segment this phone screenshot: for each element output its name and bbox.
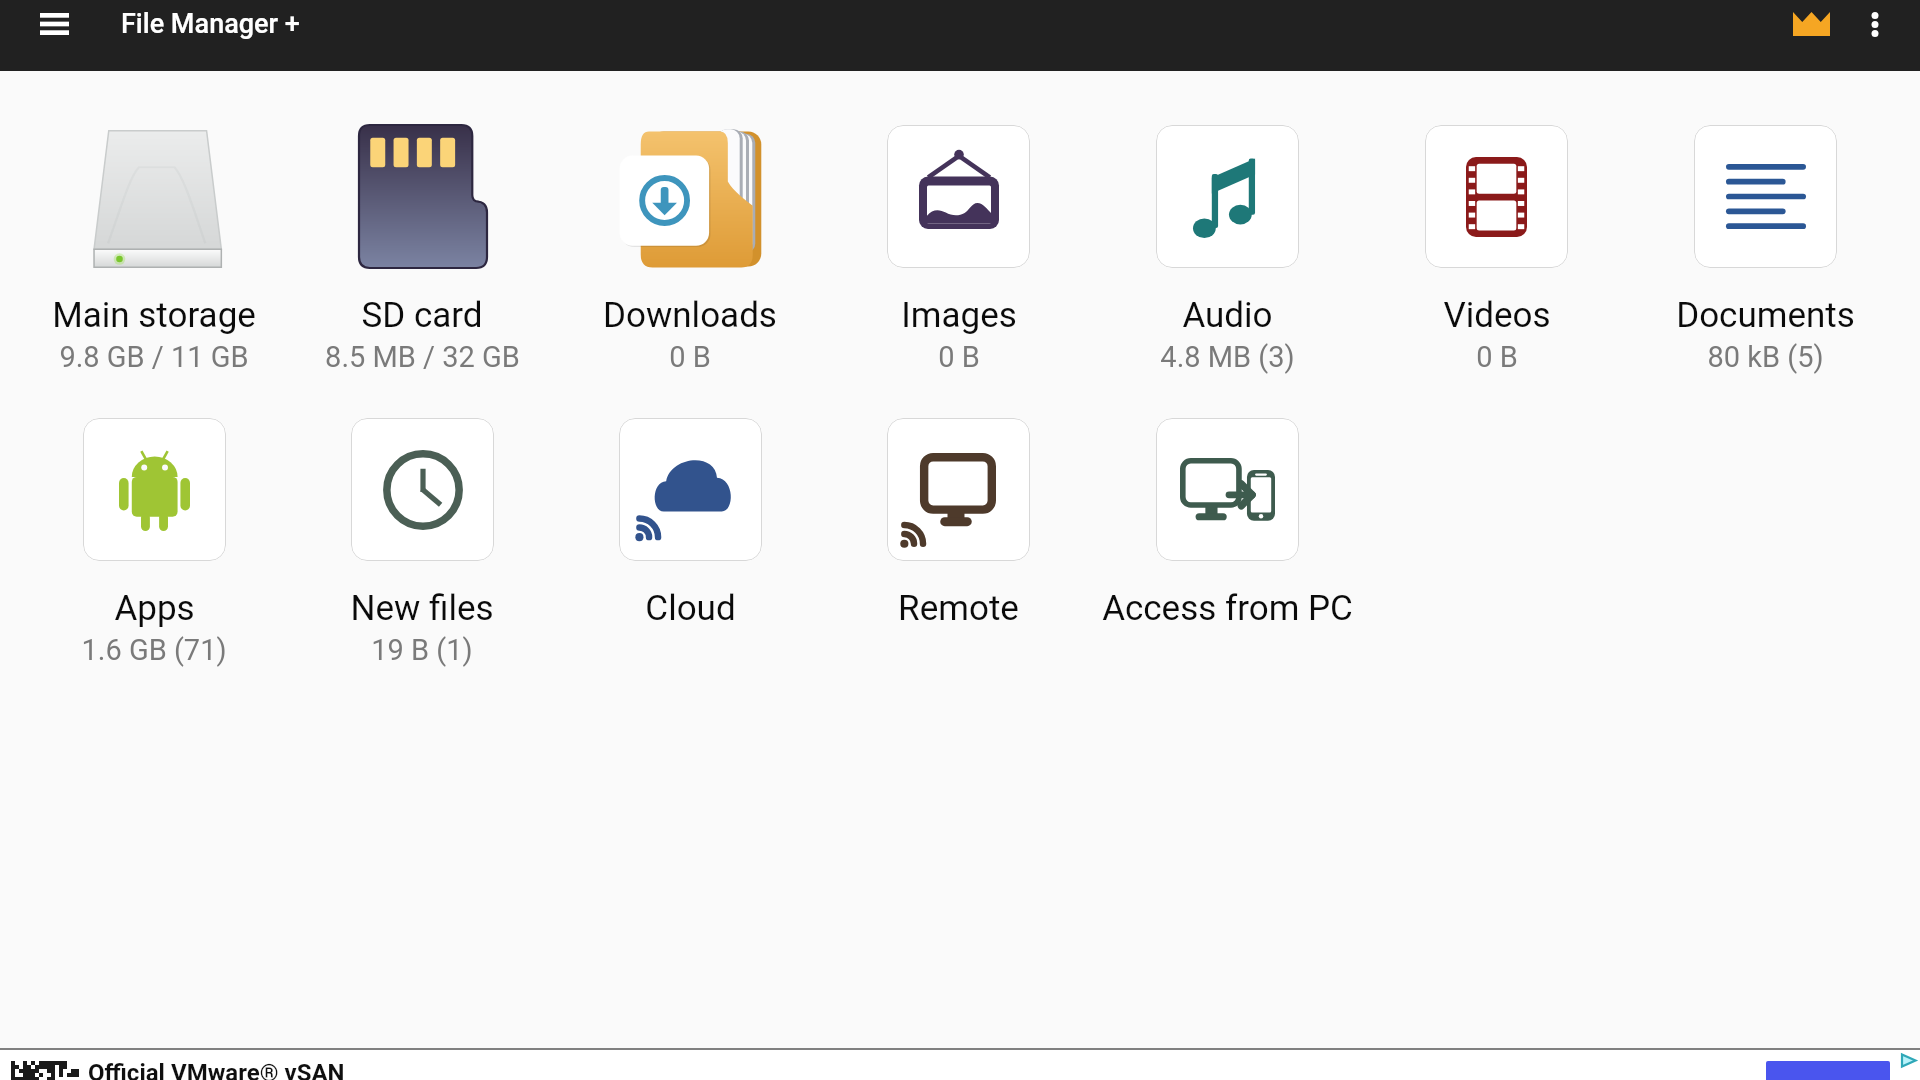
staticText: File Manager +: [121, 8, 300, 40]
staticText: Official VMware® vSAN: [88, 1059, 345, 1080]
staticText: Apps: [114, 588, 195, 629]
button[interactable]: Downloads: [556, 125, 824, 374]
staticText: 19 B (1): [371, 633, 473, 667]
staticText: 0 B: [1476, 340, 1518, 374]
staticText: Images: [901, 295, 1017, 336]
button[interactable]: Open navigation drawer: [30, 0, 78, 48]
button[interactable]: Audio: [1093, 125, 1362, 374]
staticText: Downloads: [603, 295, 777, 336]
button[interactable]: Main storage: [20, 125, 288, 374]
staticText: 80 kB (5): [1707, 340, 1824, 374]
button[interactable]: Cloud: [556, 418, 824, 629]
button[interactable]: New files: [288, 418, 556, 667]
staticText: SD card: [361, 295, 483, 336]
button[interactable]: Documents: [1631, 125, 1900, 374]
staticText: Access from PC: [1102, 588, 1353, 629]
button[interactable]: Remote: [824, 418, 1093, 629]
staticText: 0 B: [669, 340, 711, 374]
staticText: Cloud: [645, 588, 736, 629]
button[interactable]: Access from PC: [1093, 418, 1362, 629]
button[interactable]: SD card: [288, 125, 556, 374]
staticText: 0 B: [938, 340, 980, 374]
button[interactable]: [1766, 1061, 1890, 1080]
staticText: Main storage: [52, 295, 256, 336]
staticText: 9.8 GB / 11 GB: [59, 340, 249, 374]
staticText: 4.8 MB (3): [1160, 340, 1295, 374]
staticText: New files: [350, 588, 494, 629]
button[interactable]: Premium: [1787, 0, 1835, 48]
button[interactable]: Videos: [1362, 125, 1631, 374]
staticText: Videos: [1443, 295, 1551, 336]
button[interactable]: Apps: [20, 418, 288, 667]
staticText: Remote: [898, 588, 1019, 629]
staticText: 1.6 GB (71): [81, 633, 227, 667]
staticText: 8.5 MB / 32 GB: [325, 340, 520, 374]
button[interactable]: Images: [824, 125, 1093, 374]
button[interactable]: More options: [1851, 0, 1899, 48]
staticText: Audio: [1182, 295, 1273, 336]
staticText: Documents: [1676, 295, 1855, 336]
